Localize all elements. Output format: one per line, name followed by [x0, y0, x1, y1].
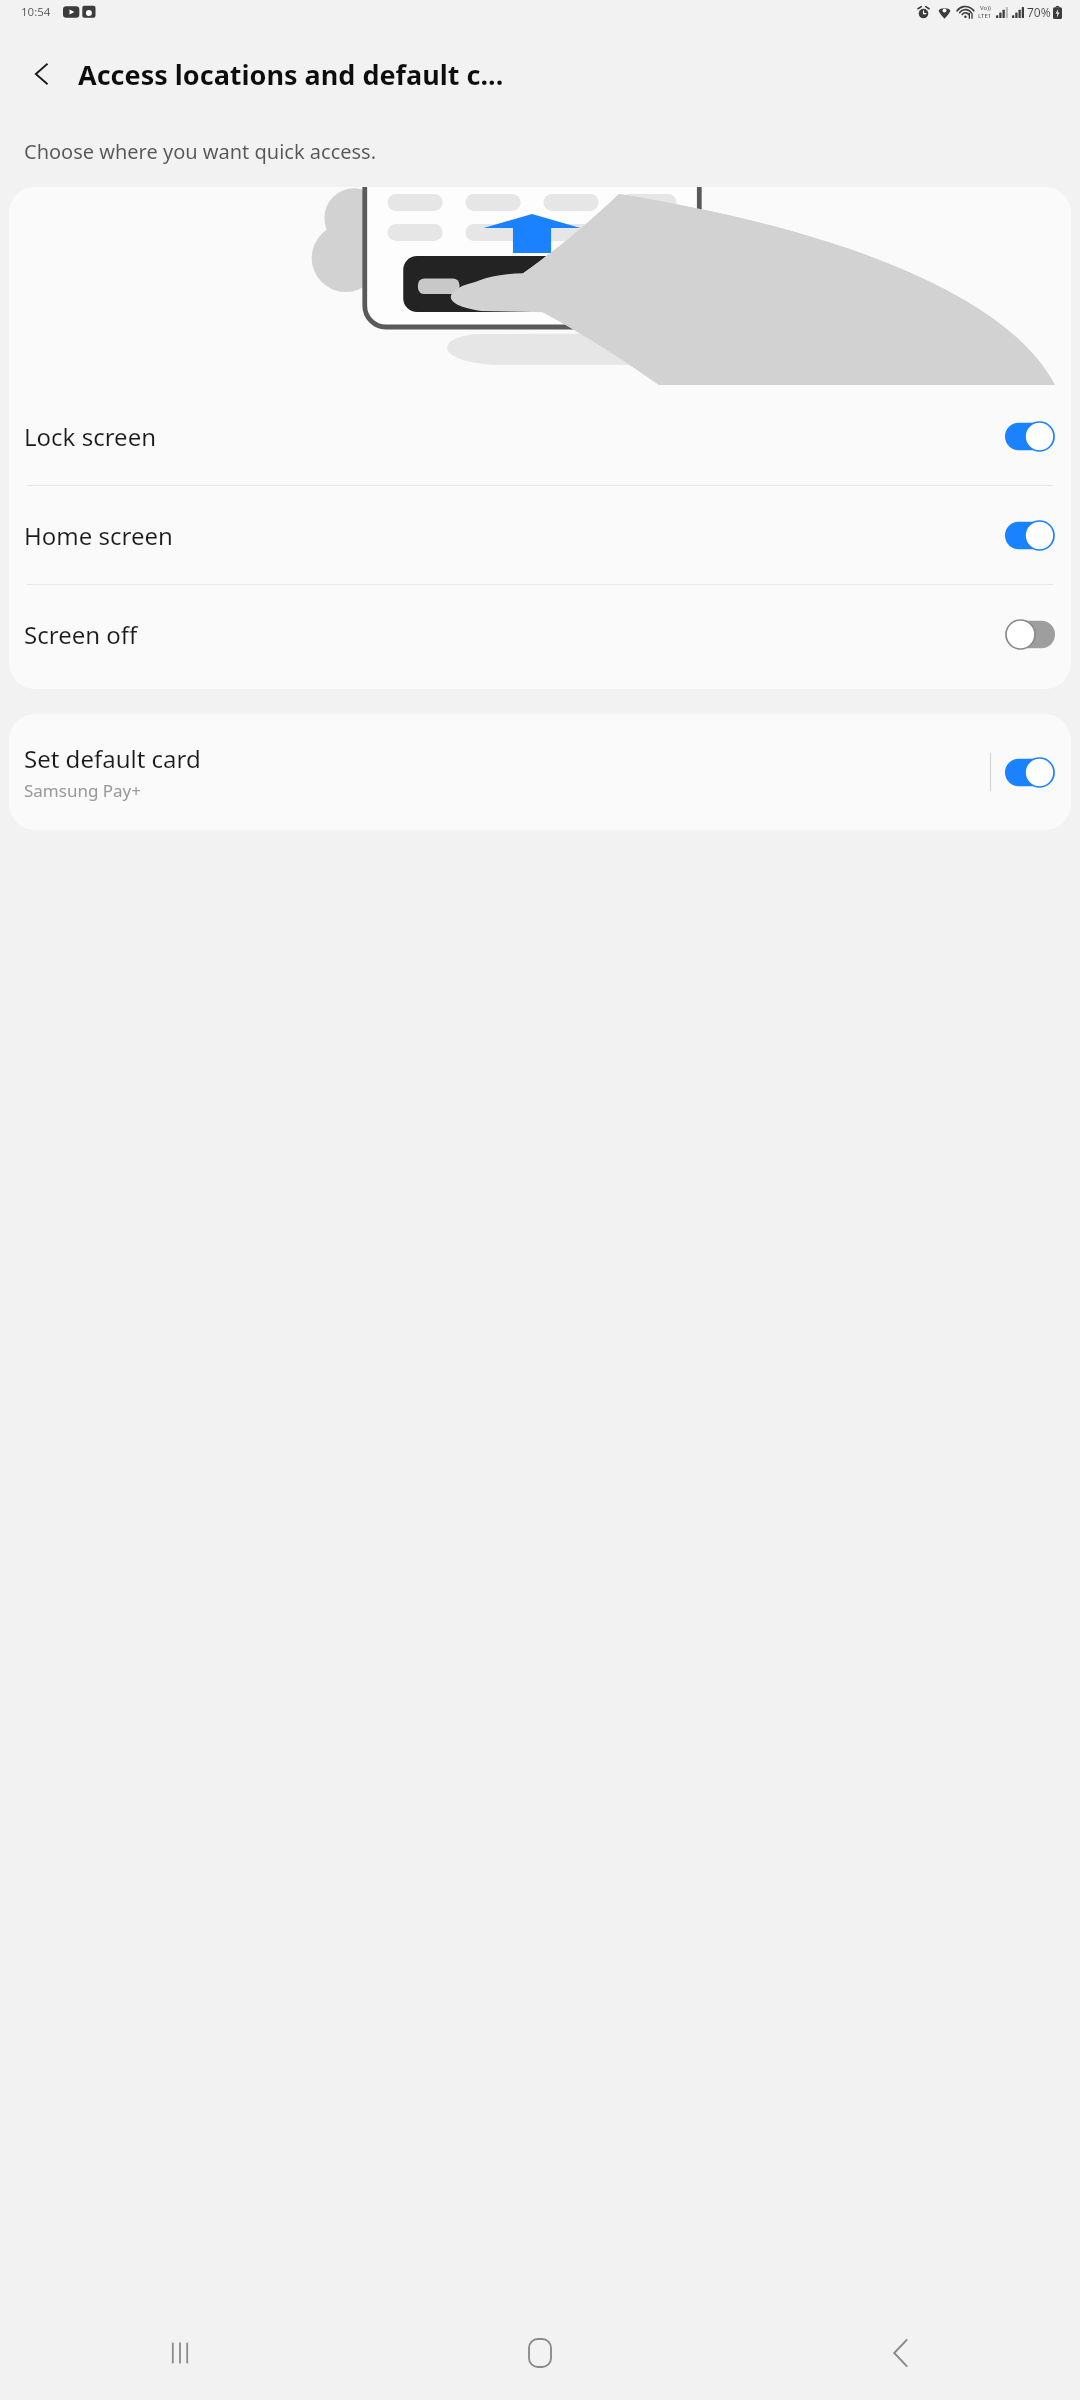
button[interactable]: Recents	[0, 2305, 360, 2400]
button[interactable]: Back	[720, 2305, 1080, 2400]
button[interactable]: Set default card	[9, 714, 1071, 830]
button[interactable]: Home	[360, 2305, 720, 2400]
staticText: Lock screen	[24, 420, 1005, 453]
button[interactable]: Back	[14, 46, 70, 102]
button[interactable]	[1005, 520, 1055, 551]
staticText: Access locations and default c...	[78, 56, 504, 93]
staticText: Samsung Pay+	[24, 779, 142, 802]
button[interactable]: Lock screen	[9, 387, 1071, 485]
staticText: Vo))	[980, 4, 991, 12]
staticText: 70%	[1027, 4, 1051, 20]
staticText: Choose where you want quick access.	[24, 138, 377, 165]
staticText: 10:54	[21, 4, 51, 20]
button[interactable]	[1005, 619, 1055, 650]
button[interactable]	[1005, 757, 1055, 788]
staticText: Set default card	[24, 742, 201, 775]
staticText: LTE1	[978, 12, 992, 20]
button[interactable]: Screen off	[9, 585, 1071, 683]
button[interactable]	[1005, 421, 1055, 452]
button[interactable]: Home screen	[9, 486, 1071, 584]
staticText: Home screen	[24, 519, 1005, 552]
staticText: Screen off	[24, 618, 1005, 651]
